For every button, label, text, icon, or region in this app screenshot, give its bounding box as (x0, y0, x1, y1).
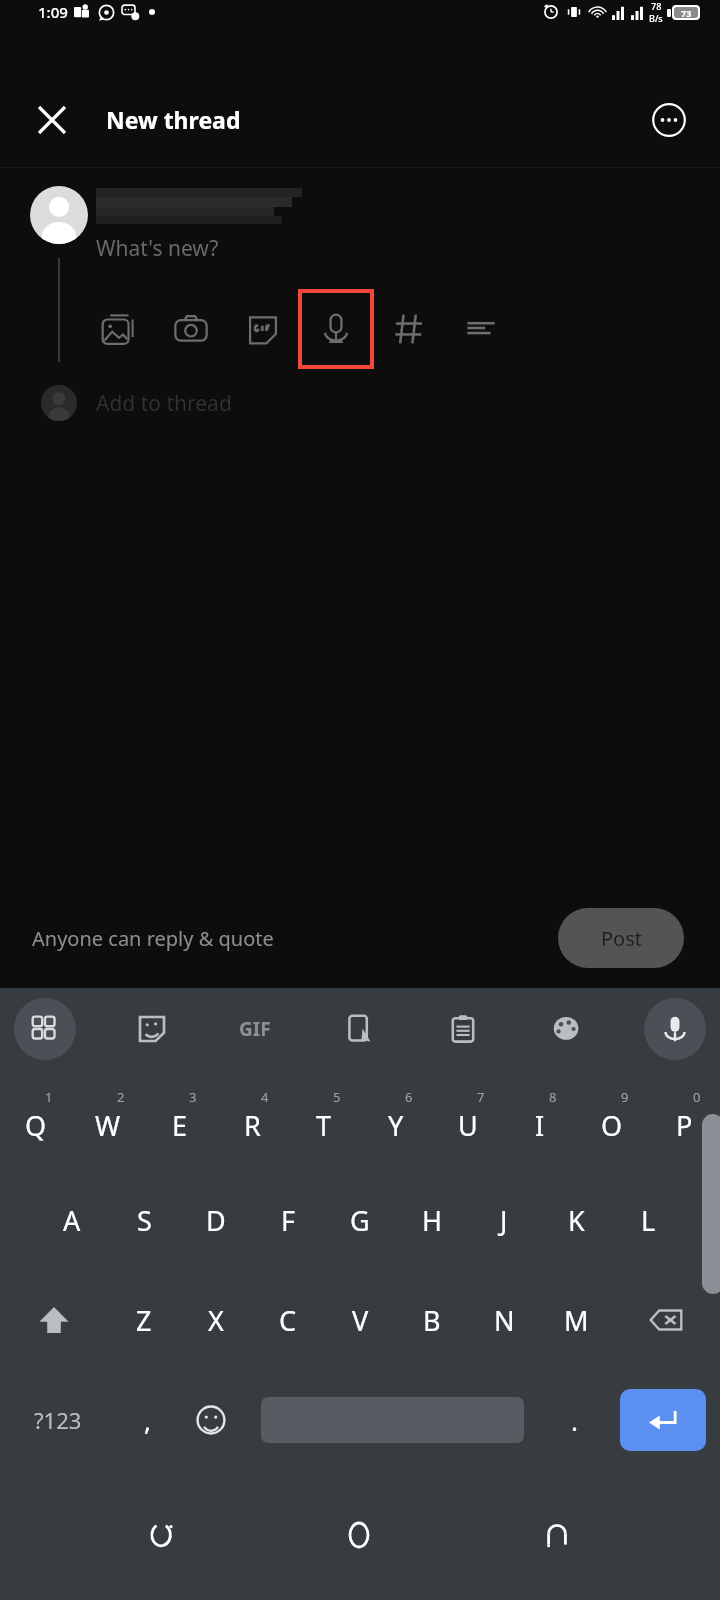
staticText: Q (25, 1107, 47, 1144)
button[interactable]: B (396, 1270, 468, 1370)
button[interactable]: 9 (576, 1070, 648, 1170)
button[interactable]: C (252, 1270, 324, 1370)
button[interactable]: Clipboard (436, 1002, 490, 1056)
staticText: 4 (261, 1088, 269, 1106)
button[interactable]: Add tag (386, 306, 432, 352)
staticText: 9 (621, 1088, 629, 1106)
staticText: A (63, 1202, 81, 1239)
staticText: M (564, 1302, 589, 1339)
button[interactable]: G (324, 1170, 396, 1270)
button[interactable]: N (468, 1270, 540, 1370)
staticText: N (494, 1302, 515, 1339)
button[interactable]: J (468, 1170, 540, 1270)
staticText: 2 (117, 1088, 125, 1106)
staticText: Z (136, 1302, 152, 1339)
button[interactable]: L (612, 1170, 684, 1270)
staticText: R (244, 1107, 261, 1144)
button[interactable]: F (252, 1170, 324, 1270)
staticText: Y (388, 1107, 404, 1144)
staticText: V (352, 1302, 369, 1339)
staticText: J (500, 1202, 508, 1239)
button[interactable]: 7 (432, 1070, 504, 1170)
button[interactable]: 1 (0, 1070, 72, 1170)
staticText: 73 (681, 7, 692, 18)
staticText: Add to thread (96, 389, 232, 418)
staticText: X (208, 1302, 224, 1339)
button[interactable]: 8 (504, 1070, 576, 1170)
button[interactable]: 3 (144, 1070, 216, 1170)
staticText: S (137, 1202, 152, 1239)
button[interactable]: Add GIF (240, 306, 286, 352)
button[interactable]: , (115, 1370, 179, 1470)
staticText: K (568, 1202, 585, 1239)
button[interactable]: Z (108, 1270, 180, 1370)
staticText: 78 (651, 0, 662, 12)
button[interactable]: H (396, 1170, 468, 1270)
button[interactable]: Theme (540, 1002, 594, 1056)
button[interactable]: Post (558, 908, 684, 968)
button[interactable]: 6 (360, 1070, 432, 1170)
staticText: B (423, 1302, 441, 1339)
button[interactable]: Anyone can reply & quote (32, 925, 274, 952)
staticText: 0 (693, 1088, 701, 1106)
button[interactable]: V (324, 1270, 396, 1370)
button[interactable]: Enter (620, 1389, 706, 1451)
button[interactable]: ?123 (0, 1370, 115, 1470)
staticText: L (641, 1202, 656, 1239)
button[interactable]: Recents (127, 1500, 197, 1570)
button[interactable]: Record voice (300, 291, 372, 367)
button[interactable]: Add poll (458, 306, 504, 352)
staticText: ?123 (34, 1405, 82, 1435)
staticText: 7 (477, 1088, 485, 1106)
staticText: Post (601, 925, 642, 952)
staticText: 1:09 (38, 2, 68, 22)
staticText: G (350, 1202, 370, 1239)
button[interactable]: 0 (648, 1070, 720, 1170)
button[interactable]: Stickers (125, 1002, 179, 1056)
staticText: 5 (333, 1088, 341, 1106)
button[interactable]: 4 (216, 1070, 288, 1170)
button[interactable]: X (180, 1270, 252, 1370)
staticText: T (316, 1107, 332, 1144)
button[interactable]: GIF (228, 1002, 282, 1056)
button[interactable]: Space (243, 1370, 542, 1470)
staticText: 1 (45, 1088, 53, 1106)
staticText: 6 (405, 1088, 413, 1106)
button[interactable]: S (108, 1170, 180, 1270)
staticText: U (458, 1107, 478, 1144)
staticText: D (206, 1202, 226, 1239)
button[interactable]: Apps (14, 998, 76, 1060)
staticText: W (95, 1107, 121, 1144)
button[interactable]: K (540, 1170, 612, 1270)
button[interactable]: Shift (0, 1270, 108, 1370)
button[interactable]: Voice input (644, 998, 706, 1060)
staticText: F (281, 1202, 296, 1239)
button[interactable]: A (36, 1170, 108, 1270)
staticText: 8 (549, 1088, 557, 1106)
staticText: E (172, 1107, 188, 1144)
staticText: What's new? (96, 234, 219, 263)
staticText: GIF (239, 1016, 271, 1042)
button[interactable]: M (540, 1270, 612, 1370)
button[interactable]: Back (522, 1500, 592, 1570)
button[interactable]: Add photo (96, 306, 142, 352)
button[interactable]: Emoji (179, 1370, 243, 1470)
button[interactable]: Home (324, 1500, 394, 1570)
staticText: . (571, 1403, 578, 1438)
staticText: O (601, 1107, 623, 1144)
staticText: 3 (189, 1088, 197, 1106)
button[interactable]: Add to thread (24, 385, 720, 421)
button[interactable]: Close (26, 94, 78, 146)
button[interactable]: 2 (72, 1070, 144, 1170)
button[interactable]: Camera (168, 306, 214, 352)
staticText: C (279, 1302, 297, 1339)
button[interactable]: 5 (288, 1070, 360, 1170)
staticText: B/s (649, 12, 663, 24)
button[interactable]: Backspace (612, 1270, 720, 1370)
button[interactable]: More options (644, 95, 694, 145)
staticText: New thread (106, 104, 241, 135)
staticText: I (535, 1107, 545, 1144)
button[interactable]: . (542, 1370, 606, 1470)
button[interactable]: D (180, 1170, 252, 1270)
button[interactable]: Handwriting (332, 1002, 386, 1056)
